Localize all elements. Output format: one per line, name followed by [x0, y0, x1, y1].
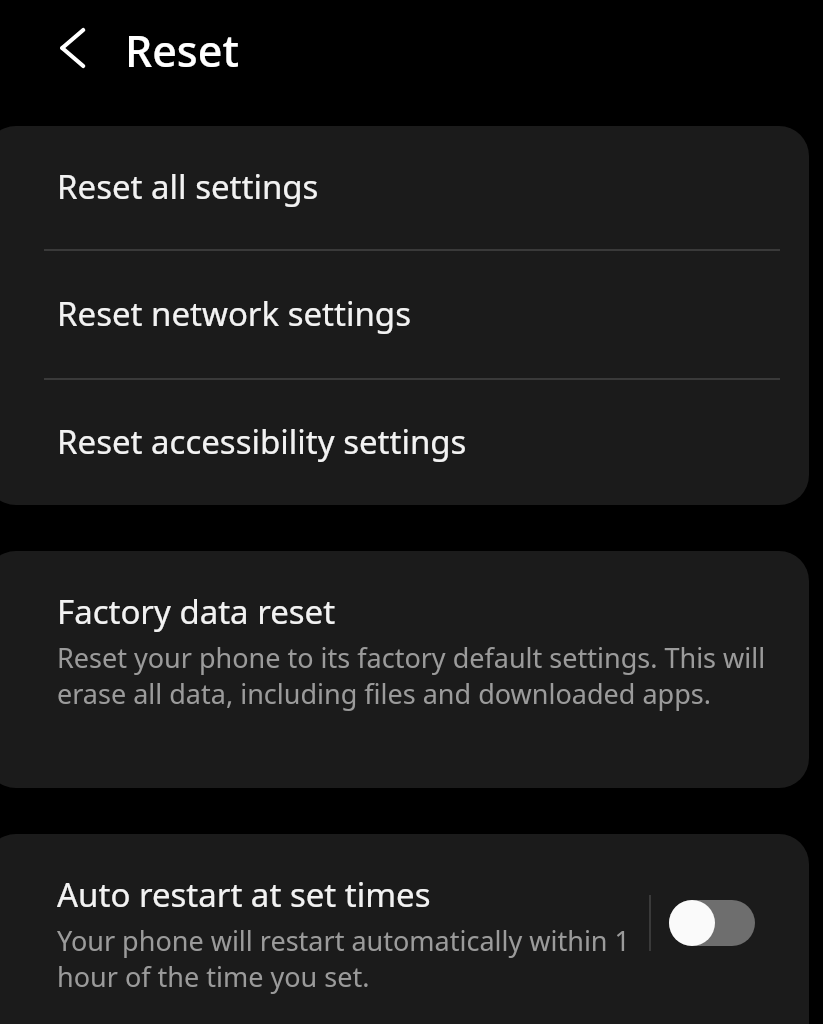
staticText: Factory data reset [57, 592, 336, 633]
button[interactable]: Factory data reset [0, 551, 809, 788]
button[interactable]: Reset network settings [0, 251, 809, 378]
staticText: Your phone will restart automatically wi… [57, 923, 637, 995]
button[interactable]: Reset accessibility settings [0, 380, 809, 505]
button[interactable]: Back [40, 18, 100, 78]
button[interactable]: Auto restart at set times toggle [662, 878, 762, 968]
staticText: Reset network settings [57, 294, 411, 335]
staticText: Reset accessibility settings [57, 422, 467, 463]
button[interactable]: Reset all settings [0, 126, 809, 249]
staticText: Auto restart at set times [57, 875, 431, 916]
staticText: Reset your phone to its factory default … [57, 640, 783, 712]
staticText: Reset all settings [57, 167, 319, 208]
button[interactable]: Auto restart at set times [0, 834, 809, 1024]
staticText: Reset [125, 21, 239, 80]
